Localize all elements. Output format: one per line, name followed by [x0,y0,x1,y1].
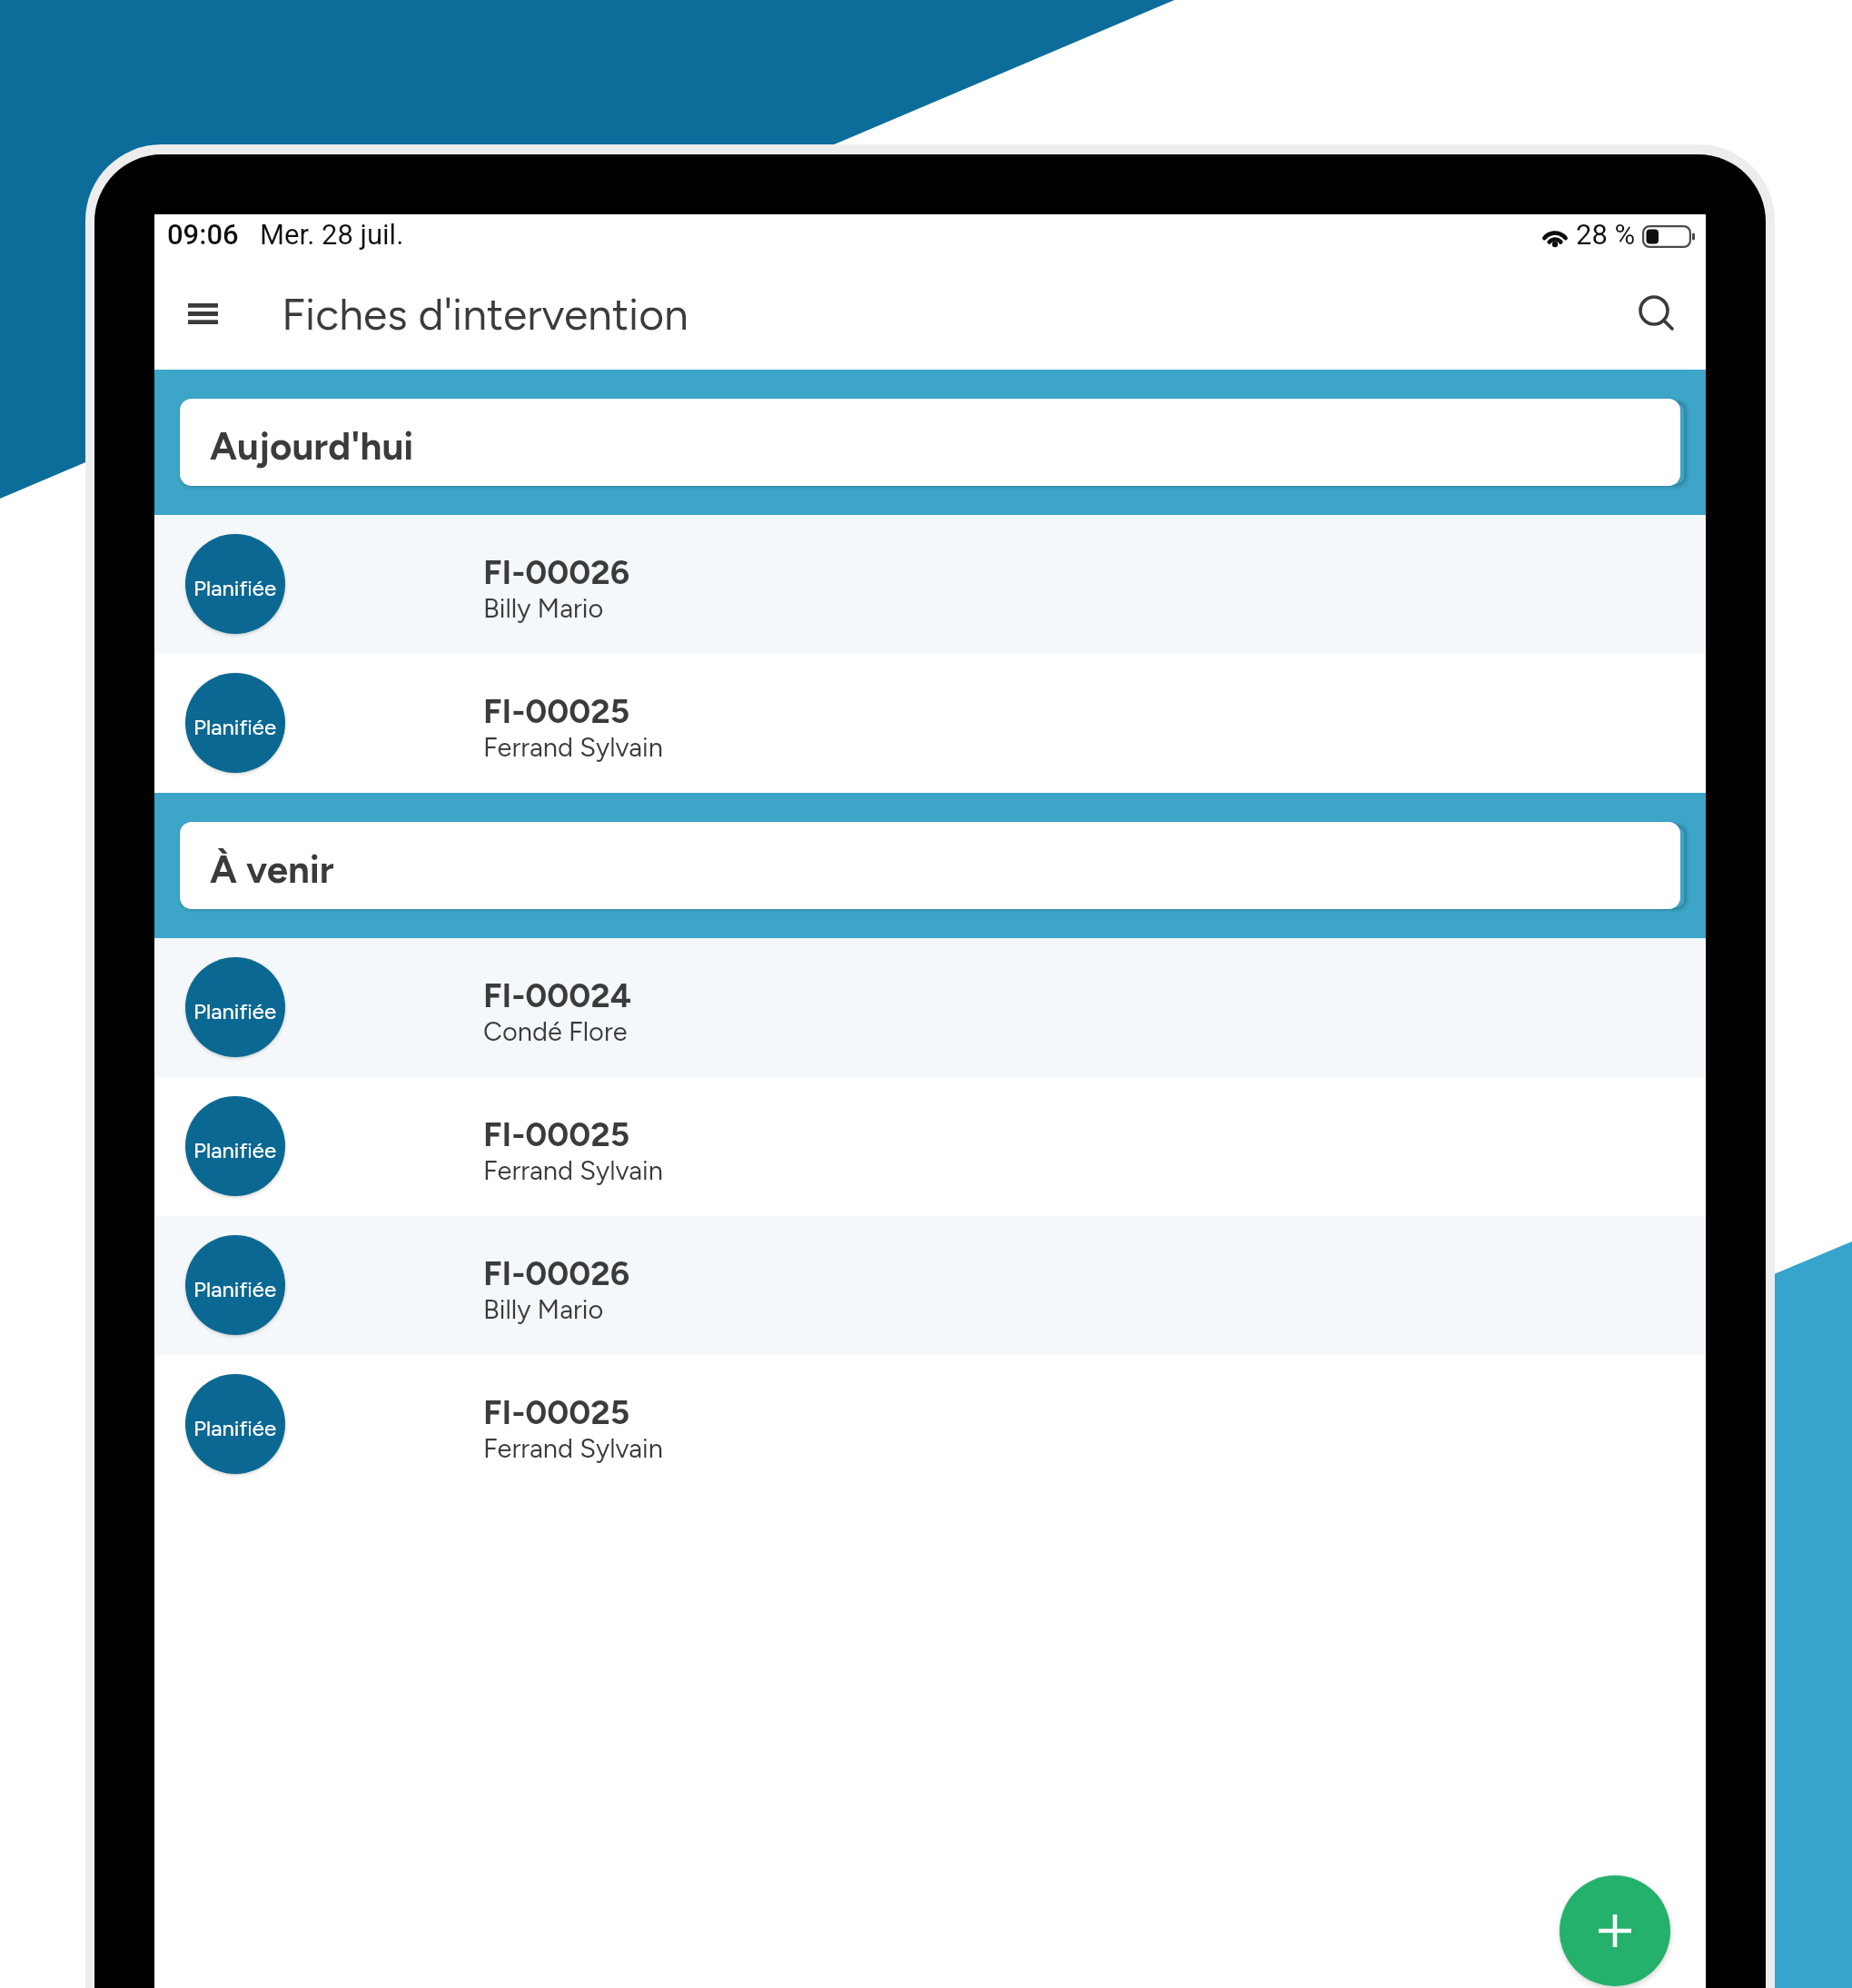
button[interactable]: Aujourd'hui [180,399,1680,486]
staticText: FI-00025 [483,691,630,731]
button[interactable]: Planifiée [154,1077,1706,1216]
staticText: Planifiée [193,714,277,740]
staticText: Planifiée [193,575,277,601]
button[interactable]: À venir [180,822,1680,909]
staticText: FI-00026 [483,1253,630,1293]
staticText: Fiches d'intervention [282,288,688,341]
staticText: FI-00025 [483,1392,630,1432]
staticText: Condé Flore [483,1015,628,1047]
button[interactable]: Planifiée [154,1216,1706,1355]
staticText: FI-00025 [483,1114,630,1154]
staticText: FI-00026 [483,552,630,592]
button[interactable]: Planifiée [154,1355,1706,1494]
staticText: 28 % [1576,218,1636,251]
button[interactable]: Planifiée [154,515,1706,654]
button[interactable]: Planifiée [154,938,1706,1077]
staticText: 09:06 [167,218,239,251]
staticText: Mer. 28 juil. [260,218,404,251]
staticText: À venir [210,846,334,892]
staticText: Planifiée [193,1415,277,1441]
staticText: Aujourd'hui [210,423,414,469]
button[interactable]: Menu [159,274,247,368]
staticText: Ferrand Sylvain [483,1432,664,1464]
staticText: Ferrand Sylvain [483,1154,664,1186]
staticText: Billy Mario [483,592,604,624]
button[interactable]: Planifiée [154,654,1706,793]
staticText: Planifiée [193,998,277,1024]
staticText: Planifiée [193,1137,277,1163]
staticText: FI-00024 [483,975,632,1015]
staticText: Planifiée [193,1276,277,1302]
staticText: Billy Mario [483,1293,604,1325]
button[interactable]: Ajouter une fiche [1560,1875,1670,1986]
staticText: Ferrand Sylvain [483,731,664,763]
button[interactable]: Rechercher [1610,274,1698,368]
